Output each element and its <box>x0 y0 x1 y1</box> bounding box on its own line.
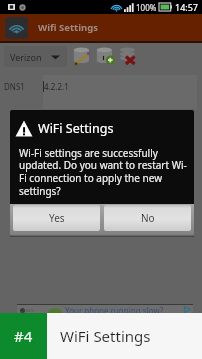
staticText: WiFi Settings <box>60 326 151 346</box>
staticText: WiFi Settings <box>38 120 114 137</box>
staticText: Wi-Fi settings are successfully updated.… <box>19 146 190 198</box>
button[interactable]: Add profile <box>96 45 117 66</box>
button[interactable]: App icon <box>5 17 28 39</box>
staticText: Yes <box>49 211 65 225</box>
staticText: 100% <box>136 2 157 13</box>
staticText: No <box>141 211 155 225</box>
staticText: Verizon <box>10 51 42 63</box>
button[interactable]: Yes <box>13 205 100 231</box>
staticText: Your phone running slow? <box>65 305 164 315</box>
button[interactable]: No <box>104 205 191 231</box>
button[interactable]: Verizon <box>4 46 67 67</box>
button[interactable]: Advertisement <box>17 304 193 314</box>
staticText: ADS <box>26 308 34 313</box>
staticText: 14:57 <box>175 1 199 13</box>
button[interactable]: Delete profile <box>119 45 140 66</box>
staticText: 4.2.2.1 <box>44 81 69 92</box>
button[interactable]: 4.2.2.1 <box>43 75 197 109</box>
button[interactable]: Edit profile <box>73 45 94 66</box>
button[interactable]: #4 <box>0 313 47 359</box>
staticText: Wifi Settings <box>38 21 98 34</box>
staticText: DNS1 <box>4 81 25 92</box>
staticText: #4 <box>14 326 33 346</box>
